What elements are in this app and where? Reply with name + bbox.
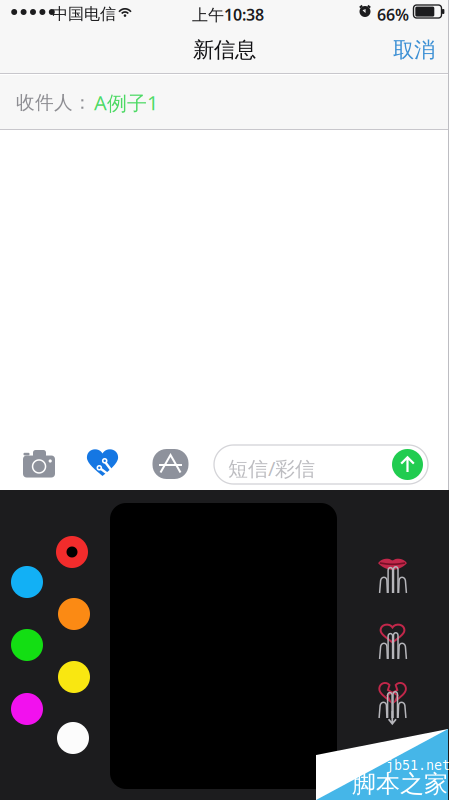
button[interactable]: Ink colour xyxy=(11,629,43,661)
staticText: 取消 xyxy=(393,37,435,63)
staticText: 66% xyxy=(377,4,409,25)
staticText: jb51.net xyxy=(386,758,449,773)
button[interactable]: Ink colour xyxy=(58,661,90,693)
staticText: 脚本之家 xyxy=(352,769,448,799)
staticText: 短信/彩信 xyxy=(228,455,315,482)
button[interactable]: Ink colour xyxy=(11,693,43,725)
button[interactable]: App Store xyxy=(145,438,196,490)
button[interactable]: Ink colour xyxy=(56,536,88,568)
button[interactable]: Camera xyxy=(15,435,63,487)
staticText: 新信息 xyxy=(193,37,256,63)
staticText: A例子1 xyxy=(94,89,158,116)
button[interactable]: Digital Touch xyxy=(79,436,126,487)
button[interactable]: Ink colour xyxy=(58,598,90,630)
staticText: 上午10:38 xyxy=(192,4,264,25)
staticText: 中国电信 xyxy=(52,4,116,24)
staticText: 收件人： xyxy=(16,91,92,114)
button[interactable]: Send xyxy=(392,449,423,480)
button[interactable]: 取消 xyxy=(379,29,449,71)
button[interactable]: Ink colour xyxy=(11,566,43,598)
button[interactable]: Ink colour xyxy=(57,722,89,754)
